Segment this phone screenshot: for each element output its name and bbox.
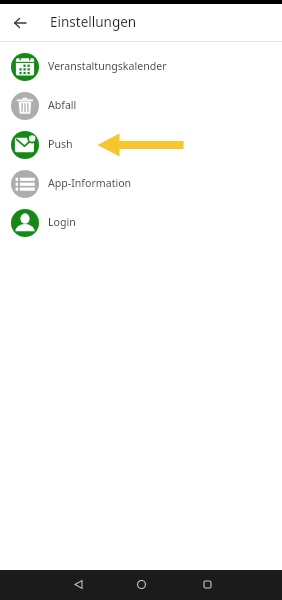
staticText: Push xyxy=(48,137,73,151)
staticText: Veranstaltungskalender xyxy=(48,59,167,73)
button[interactable]: App-Information xyxy=(0,164,282,203)
staticText: Einstellungen xyxy=(50,13,137,31)
button[interactable]: Recents xyxy=(191,570,224,598)
button[interactable]: Home xyxy=(125,570,158,598)
button[interactable]: Abfall xyxy=(0,86,282,125)
button[interactable]: Veranstaltungskalender xyxy=(0,47,282,86)
staticText: Abfall xyxy=(48,98,77,112)
button[interactable]: Login xyxy=(0,203,282,242)
button[interactable]: Back xyxy=(62,570,95,598)
staticText: Login xyxy=(48,215,76,229)
button[interactable]: Push xyxy=(0,125,282,164)
staticText: App-Information xyxy=(48,176,132,190)
button[interactable]: Back xyxy=(5,8,35,38)
